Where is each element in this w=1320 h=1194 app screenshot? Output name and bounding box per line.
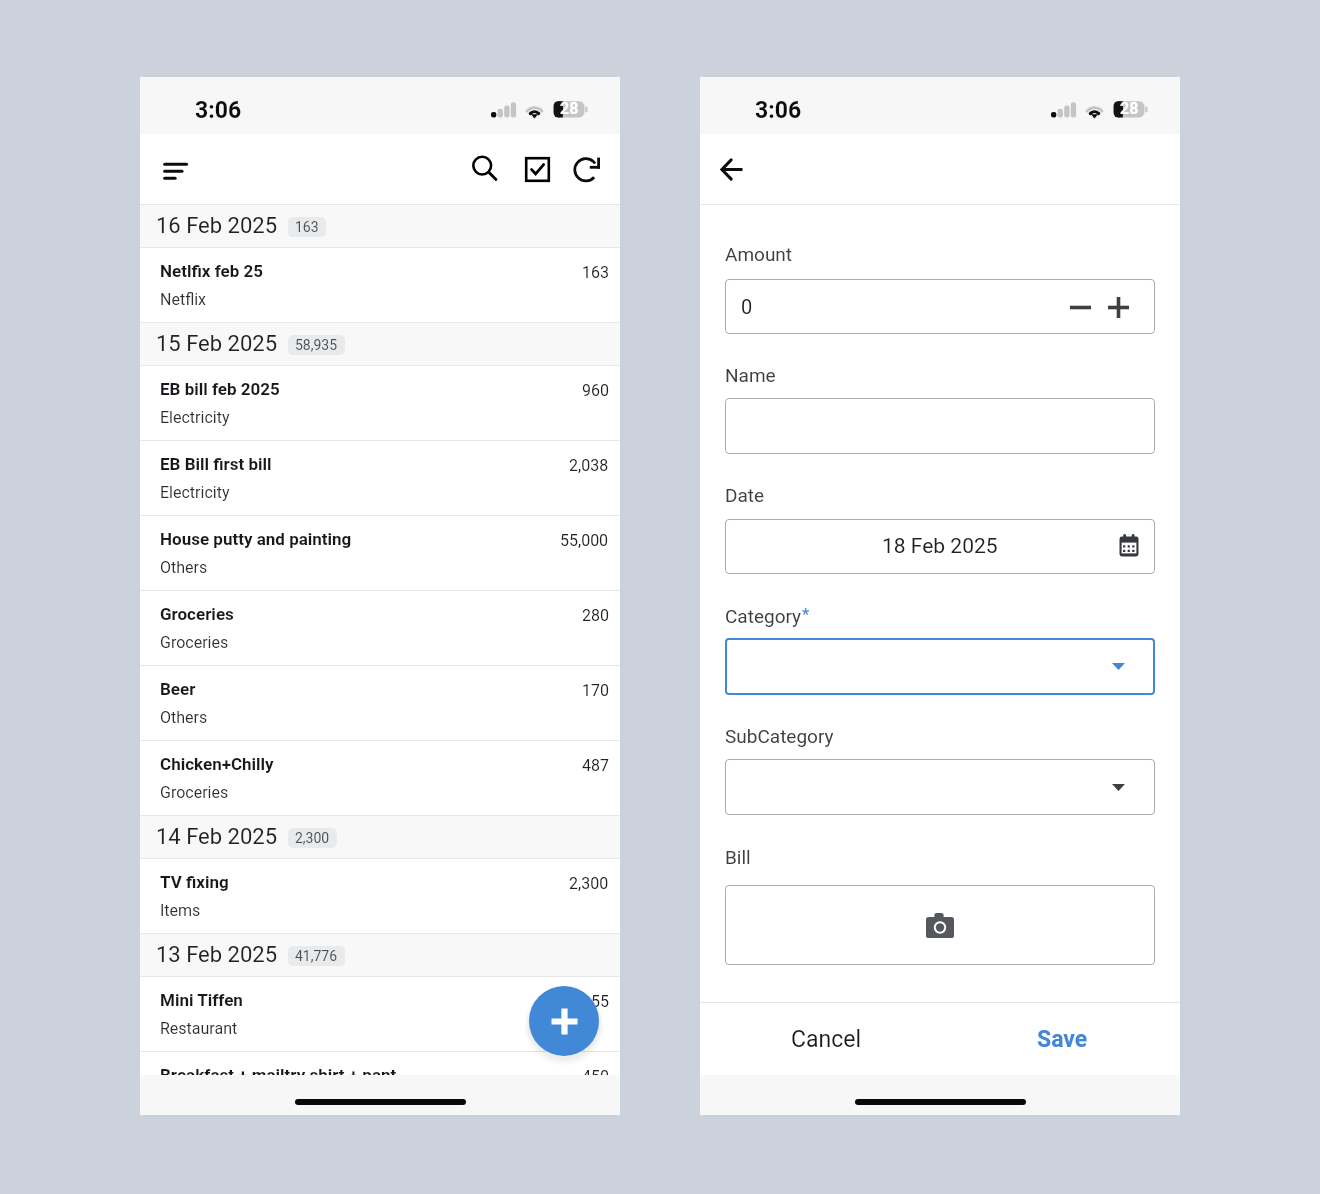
button[interactable]: Add expense [529,986,599,1056]
staticText: Netflix [160,290,207,309]
button[interactable]: EB Bill first bill [140,441,620,515]
staticText: Groceries [160,633,229,652]
staticText: 18 Feb 2025 [882,534,998,559]
staticText: 15 Feb 2025 [156,331,278,357]
staticText: Beer [160,679,196,699]
button[interactable]: Netlfix feb 25 [140,248,620,322]
staticText: Others [160,558,208,577]
button[interactable]: Amount field [725,279,1155,334]
staticText: 2,300 [295,830,330,846]
button[interactable]: 13 Feb 2025 [140,934,620,976]
staticText: Groceries [160,604,234,624]
staticText: 163 [295,219,319,235]
button[interactable]: 16 Feb 2025 [140,205,620,247]
button[interactable]: SubCategory dropdown [725,759,1155,815]
button[interactable]: Cancel [709,1003,944,1075]
staticText: Items [160,901,201,920]
staticText: Cancel [791,1026,862,1053]
button[interactable]: Back [708,145,756,193]
button[interactable]: Select items [513,145,561,193]
staticText: 450 [582,1067,609,1086]
staticText: 163 [582,263,609,282]
button[interactable]: 15 Feb 2025 [140,323,620,365]
button[interactable]: Chicken+Chilly [140,741,620,815]
staticText: EB Bill first bill [160,454,272,474]
staticText: Date [725,484,765,506]
staticText: 14 Feb 2025 [156,824,278,850]
staticText: Restaurant [160,1019,238,1038]
button[interactable]: House putty and painting [140,516,620,590]
button[interactable]: Refresh [563,144,611,192]
button[interactable]: 14 Feb 2025 [140,816,620,858]
button[interactable]: Groceries [140,591,620,665]
staticText: Chicken+Chilly [160,754,274,774]
staticText: EB bill feb 2025 [160,379,280,399]
staticText: 55 [591,992,609,1011]
staticText: 280 [582,606,609,625]
staticText: 41,776 [295,948,338,964]
staticText: Bill [725,846,751,868]
staticText: Netlfix feb 25 [160,261,264,281]
staticText: 0 [741,295,753,318]
staticText: Electricity [160,408,230,427]
staticText: * [802,604,810,624]
staticText: 3:06 [755,97,802,124]
staticText: 28 [560,99,579,118]
staticText: 487 [582,756,609,775]
button[interactable]: Decrease amount [1062,289,1098,325]
staticText: 28 [1120,99,1139,118]
button[interactable]: Date field [725,519,1155,574]
button[interactable]: EB bill feb 2025 [140,366,620,440]
staticText: Groceries [160,783,229,802]
button[interactable]: TV fixing [140,859,620,933]
staticText: 16 Feb 2025 [156,213,278,239]
button[interactable]: Mini Tiffen [140,977,620,1051]
staticText: Category [725,605,802,627]
button[interactable]: Beer [140,666,620,740]
staticText: 13 Feb 2025 [156,942,278,968]
staticText: 2,300 [569,874,609,893]
staticText: Electricity [160,483,230,502]
button[interactable]: Sort [151,145,199,193]
staticText: Others [160,708,208,727]
button[interactable]: Attach bill photo [725,885,1155,965]
button[interactable]: Breakfast + mailtry shirt + pant [140,1052,620,1075]
staticText: 55,000 [560,531,609,550]
staticText: Breakfast + mailtry shirt + pant [160,1065,397,1085]
button[interactable]: Search [461,145,509,193]
button[interactable]: Select date [1112,530,1146,564]
staticText: Amount [725,243,793,265]
staticText: Mini Tiffen [160,990,243,1010]
staticText: 960 [582,381,609,400]
staticText: 3:06 [195,97,242,124]
button[interactable]: Save [944,1003,1180,1075]
staticText: TV fixing [160,872,229,892]
staticText: 170 [582,681,609,700]
button[interactable]: Category dropdown [725,638,1155,695]
staticText: 2,038 [569,456,609,475]
button[interactable]: Increase amount [1100,289,1136,325]
staticText: House putty and painting [160,529,352,549]
staticText: SubCategory [725,725,834,747]
staticText: Save [1037,1026,1088,1053]
staticText: Name [725,364,776,386]
button[interactable]: Name field [725,398,1155,454]
staticText: 58,935 [295,337,338,353]
